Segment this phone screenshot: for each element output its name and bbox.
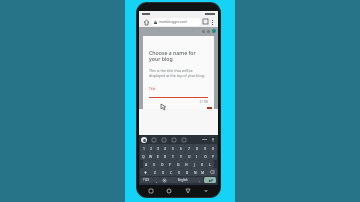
- staticText: W: [149, 154, 153, 159]
- button[interactable]: J: [190, 160, 198, 168]
- staticText: X: [162, 170, 164, 175]
- staticText: mattsblogger.com/blog.com: [159, 20, 198, 24]
- staticText: ,: [156, 178, 157, 183]
- button[interactable]: B: [183, 168, 191, 176]
- staticText: R: [164, 154, 167, 159]
- button[interactable]: Tabs: [202, 18, 209, 25]
- button[interactable]: 0: [209, 144, 217, 152]
- button[interactable]: 2: [147, 144, 154, 152]
- staticText: L: [209, 162, 211, 167]
- button[interactable]: 4: [161, 144, 169, 152]
- button[interactable]: 1: [140, 144, 147, 152]
- button[interactable]: L: [206, 160, 214, 168]
- staticText: .: [199, 178, 200, 183]
- button[interactable]: Recents: [147, 187, 155, 195]
- staticText: 8: [196, 146, 198, 151]
- button[interactable]: Back: [184, 187, 192, 195]
- staticText: Q: [142, 154, 145, 159]
- button[interactable]: ?123: [140, 177, 153, 183]
- button[interactable]: W: [147, 152, 154, 160]
- button[interactable]: 6: [177, 144, 185, 152]
- staticText: I: [196, 154, 198, 159]
- button[interactable]: K: [198, 160, 206, 168]
- button[interactable]: 9: [201, 144, 209, 152]
- staticText: Z: [154, 170, 156, 175]
- button[interactable]: Hide keyboard: [202, 187, 210, 195]
- staticText: 6: [180, 146, 182, 151]
- staticText: Y: [180, 154, 182, 159]
- button[interactable]: T: [169, 152, 177, 160]
- button[interactable]: Z: [151, 168, 159, 176]
- staticText: G: [177, 162, 180, 167]
- staticText: ?123: [143, 178, 150, 182]
- staticText: M: [201, 170, 205, 175]
- staticText: Title: [149, 87, 156, 91]
- staticText: S: [153, 162, 155, 167]
- staticText: 0 / 100: [149, 100, 208, 104]
- button[interactable]: C: [167, 168, 175, 176]
- button[interactable]: E: [154, 152, 161, 160]
- button[interactable]: O: [201, 152, 209, 160]
- staticText: 9: [204, 146, 206, 151]
- button[interactable]: X: [159, 168, 167, 176]
- button[interactable]: F: [166, 160, 174, 168]
- button[interactable]: D: [158, 160, 166, 168]
- staticText: English: [178, 178, 188, 182]
- button[interactable]: Y: [177, 152, 185, 160]
- button[interactable]: A: [143, 160, 150, 168]
- button[interactable]: Sticker: [181, 137, 187, 143]
- button[interactable]: M: [199, 168, 207, 176]
- button[interactable]: G: [174, 160, 182, 168]
- button[interactable]: Google: [141, 137, 147, 143]
- staticText: D: [161, 162, 164, 167]
- button[interactable]: More options: [209, 19, 215, 25]
- button[interactable]: 3: [154, 144, 161, 152]
- button[interactable]: Q: [140, 152, 147, 160]
- button[interactable]: GIF: [161, 137, 167, 143]
- button[interactable]: 7: [185, 144, 193, 152]
- button[interactable]: Emoji: [151, 137, 157, 143]
- staticText: V: [178, 170, 181, 175]
- staticText: 4: [164, 146, 166, 151]
- button[interactable]: Enter: [204, 177, 216, 183]
- staticText: U: [188, 154, 191, 159]
- button[interactable]: Voice input: [210, 137, 216, 143]
- staticText: 3: [157, 146, 159, 151]
- staticText: T: [172, 154, 174, 159]
- staticText: N: [194, 170, 197, 175]
- button[interactable]: 8: [193, 144, 201, 152]
- button[interactable]: Clipboard: [171, 137, 177, 143]
- button[interactable]: 5: [169, 144, 177, 152]
- button[interactable]: I: [193, 152, 201, 160]
- button[interactable]: .: [196, 177, 203, 183]
- button[interactable]: Backspace: [207, 168, 217, 176]
- button[interactable]: H: [182, 160, 190, 168]
- button[interactable]: S: [150, 160, 158, 168]
- button[interactable]: Home: [142, 18, 150, 26]
- staticText: J: [194, 162, 195, 167]
- staticText: K: [201, 162, 204, 167]
- button[interactable]: Home: [165, 187, 173, 195]
- staticText: 1: [143, 146, 145, 151]
- button[interactable]: ,: [153, 177, 160, 183]
- staticText: 5: [172, 146, 174, 151]
- staticText: This is the title that will be displayed…: [149, 68, 208, 78]
- staticText: B: [186, 170, 189, 175]
- button[interactable]: Shift: [140, 168, 151, 176]
- button[interactable]: mattsblogger.com/blog.com: [151, 18, 201, 26]
- button[interactable]: N: [191, 168, 199, 176]
- staticText: 7: [188, 146, 190, 151]
- button[interactable]: Settings: [160, 177, 169, 183]
- button[interactable]: English: [169, 177, 196, 183]
- staticText: E: [157, 154, 159, 159]
- button[interactable]: V: [175, 168, 183, 176]
- button[interactable]: U: [185, 152, 193, 160]
- button[interactable]: P: [209, 152, 217, 160]
- staticText: C: [170, 170, 173, 175]
- staticText: H: [185, 162, 188, 167]
- button[interactable]: R: [161, 152, 169, 160]
- staticText: A: [145, 162, 148, 167]
- staticText: O: [204, 154, 207, 159]
- staticText: P: [212, 154, 215, 159]
